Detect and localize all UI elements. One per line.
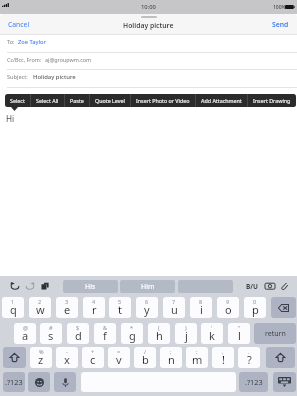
staticText: 2 — [38, 298, 42, 305]
staticText: .?123 — [5, 377, 23, 387]
button[interactable]: Paste — [41, 282, 49, 290]
button[interactable]: Redo — [26, 282, 35, 290]
button[interactable]: @ — [14, 323, 36, 344]
button[interactable]: 8 — [190, 297, 212, 318]
staticText: 8 — [199, 298, 203, 305]
button[interactable]: : — [186, 347, 208, 368]
button[interactable]: return — [254, 323, 296, 344]
button[interactable]: Emoji — [28, 372, 50, 392]
staticText: + — [91, 348, 95, 355]
button[interactable]: 5 — [109, 297, 131, 318]
button[interactable]: ' — [201, 323, 223, 344]
staticText: n — [168, 352, 175, 367]
staticText: Cancel — [8, 20, 30, 29]
staticText: u — [171, 302, 178, 317]
staticText: q — [10, 302, 17, 317]
staticText: / — [144, 348, 147, 355]
button[interactable]: = — [108, 347, 130, 368]
button[interactable]: 2 — [29, 297, 51, 318]
button[interactable]: 4 — [83, 297, 105, 318]
button[interactable]: .?123 — [239, 372, 268, 392]
button[interactable]: Shift — [266, 347, 295, 368]
button[interactable]: Him — [120, 280, 175, 293]
button[interactable]: Paste — [65, 94, 89, 107]
button[interactable]: - — [56, 347, 78, 368]
staticText: f — [103, 328, 107, 343]
button[interactable]: Insert Photo or Video — [131, 94, 195, 107]
button[interactable]: * — [121, 323, 143, 344]
button[interactable]: Camera — [265, 281, 275, 291]
staticText: 100% — [273, 4, 286, 11]
button[interactable]: 0 — [244, 297, 266, 318]
button[interactable]: 7 — [163, 297, 185, 318]
button[interactable]: His — [63, 280, 118, 293]
button[interactable]: Attach — [279, 281, 289, 291]
button[interactable]: $ — [67, 323, 89, 344]
button[interactable]: Delete — [271, 297, 296, 318]
staticText: t — [118, 302, 122, 317]
staticText: @ — [23, 324, 28, 331]
staticText: - — [66, 348, 68, 355]
button[interactable]: .?123 — [3, 372, 25, 392]
button[interactable]: 1 — [2, 297, 24, 318]
staticText: ( — [158, 324, 160, 331]
staticText: 4 — [92, 298, 96, 305]
button[interactable]: % — [30, 347, 52, 368]
button[interactable]: & — [94, 323, 116, 344]
button[interactable]: Text formatting — [246, 282, 258, 291]
staticText: His — [85, 282, 96, 292]
button[interactable]: Insert Drawing — [248, 94, 296, 107]
button[interactable]: Send — [264, 17, 297, 32]
staticText: 5 — [118, 298, 122, 305]
staticText: return — [265, 329, 286, 339]
staticText: k — [209, 328, 215, 343]
button[interactable]: Shift — [3, 347, 26, 368]
button[interactable]: ) — [175, 323, 197, 344]
staticText: To: — [7, 38, 15, 46]
button[interactable]: ( — [148, 323, 170, 344]
staticText: 3 — [65, 298, 69, 305]
button[interactable]: / — [134, 347, 156, 368]
button[interactable]: 3 — [56, 297, 78, 318]
staticText: y — [144, 302, 150, 317]
staticText: # — [49, 324, 53, 331]
staticText: % — [39, 348, 44, 355]
staticText: b — [142, 352, 149, 367]
button[interactable]: ; — [160, 347, 182, 368]
button[interactable]: Hide keyboard — [273, 372, 296, 392]
staticText: e — [64, 302, 71, 317]
staticText: h — [156, 328, 163, 343]
button[interactable]: Select — [5, 94, 30, 107]
staticText: , — [222, 348, 224, 355]
staticText: B/U — [246, 282, 258, 291]
staticText: Cc/Bcc, From: — [7, 56, 42, 63]
button[interactable]: Select All — [31, 94, 64, 107]
button[interactable]: Add Attachment — [196, 94, 247, 107]
staticText: m — [192, 352, 203, 367]
button[interactable]: Cancel — [0, 17, 38, 32]
staticText: * — [130, 324, 134, 331]
staticText: Add Attachment — [201, 97, 242, 104]
staticText: ? — [247, 352, 252, 367]
button[interactable]: , — [212, 347, 234, 368]
button[interactable]: 6 — [136, 297, 158, 318]
staticText: p — [252, 302, 259, 317]
button[interactable]: 9 — [217, 297, 239, 318]
button[interactable]: . — [238, 347, 260, 368]
staticText: " — [238, 324, 241, 331]
button[interactable]: Dictation — [54, 372, 76, 392]
button[interactable]: Quote Level — [90, 94, 130, 107]
staticText: z — [38, 352, 44, 367]
button[interactable]: # — [40, 323, 62, 344]
staticText: 10:00 — [141, 3, 156, 11]
button[interactable]: " — [228, 323, 250, 344]
staticText: & — [103, 324, 108, 331]
staticText: ) — [185, 324, 187, 331]
staticText: j — [185, 328, 188, 343]
staticText: 1 — [11, 298, 15, 305]
staticText: w — [36, 302, 45, 317]
button[interactable]: Undo — [10, 282, 19, 290]
button[interactable]: + — [82, 347, 104, 368]
